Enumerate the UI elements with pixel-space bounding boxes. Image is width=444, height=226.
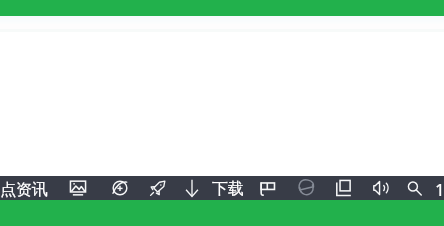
button[interactable]: Windows	[331, 176, 357, 200]
button[interactable]: Split screen	[255, 176, 281, 200]
button[interactable]: Search	[401, 176, 427, 200]
button[interactable]: Boost	[145, 176, 171, 200]
button[interactable]: Add to collection	[107, 176, 133, 200]
button[interactable]: Browser	[293, 176, 319, 200]
staticText: 一点资讯	[0, 180, 48, 200]
button[interactable]: Download	[179, 176, 205, 200]
button[interactable]: 下载	[209, 177, 247, 201]
staticText: 下载	[212, 179, 244, 199]
button[interactable]: 1	[432, 177, 444, 201]
button[interactable]: Volume	[368, 176, 394, 200]
button[interactable]: 一点资讯	[0, 178, 52, 202]
button[interactable]: Images	[65, 176, 91, 200]
staticText: 1	[435, 178, 444, 201]
